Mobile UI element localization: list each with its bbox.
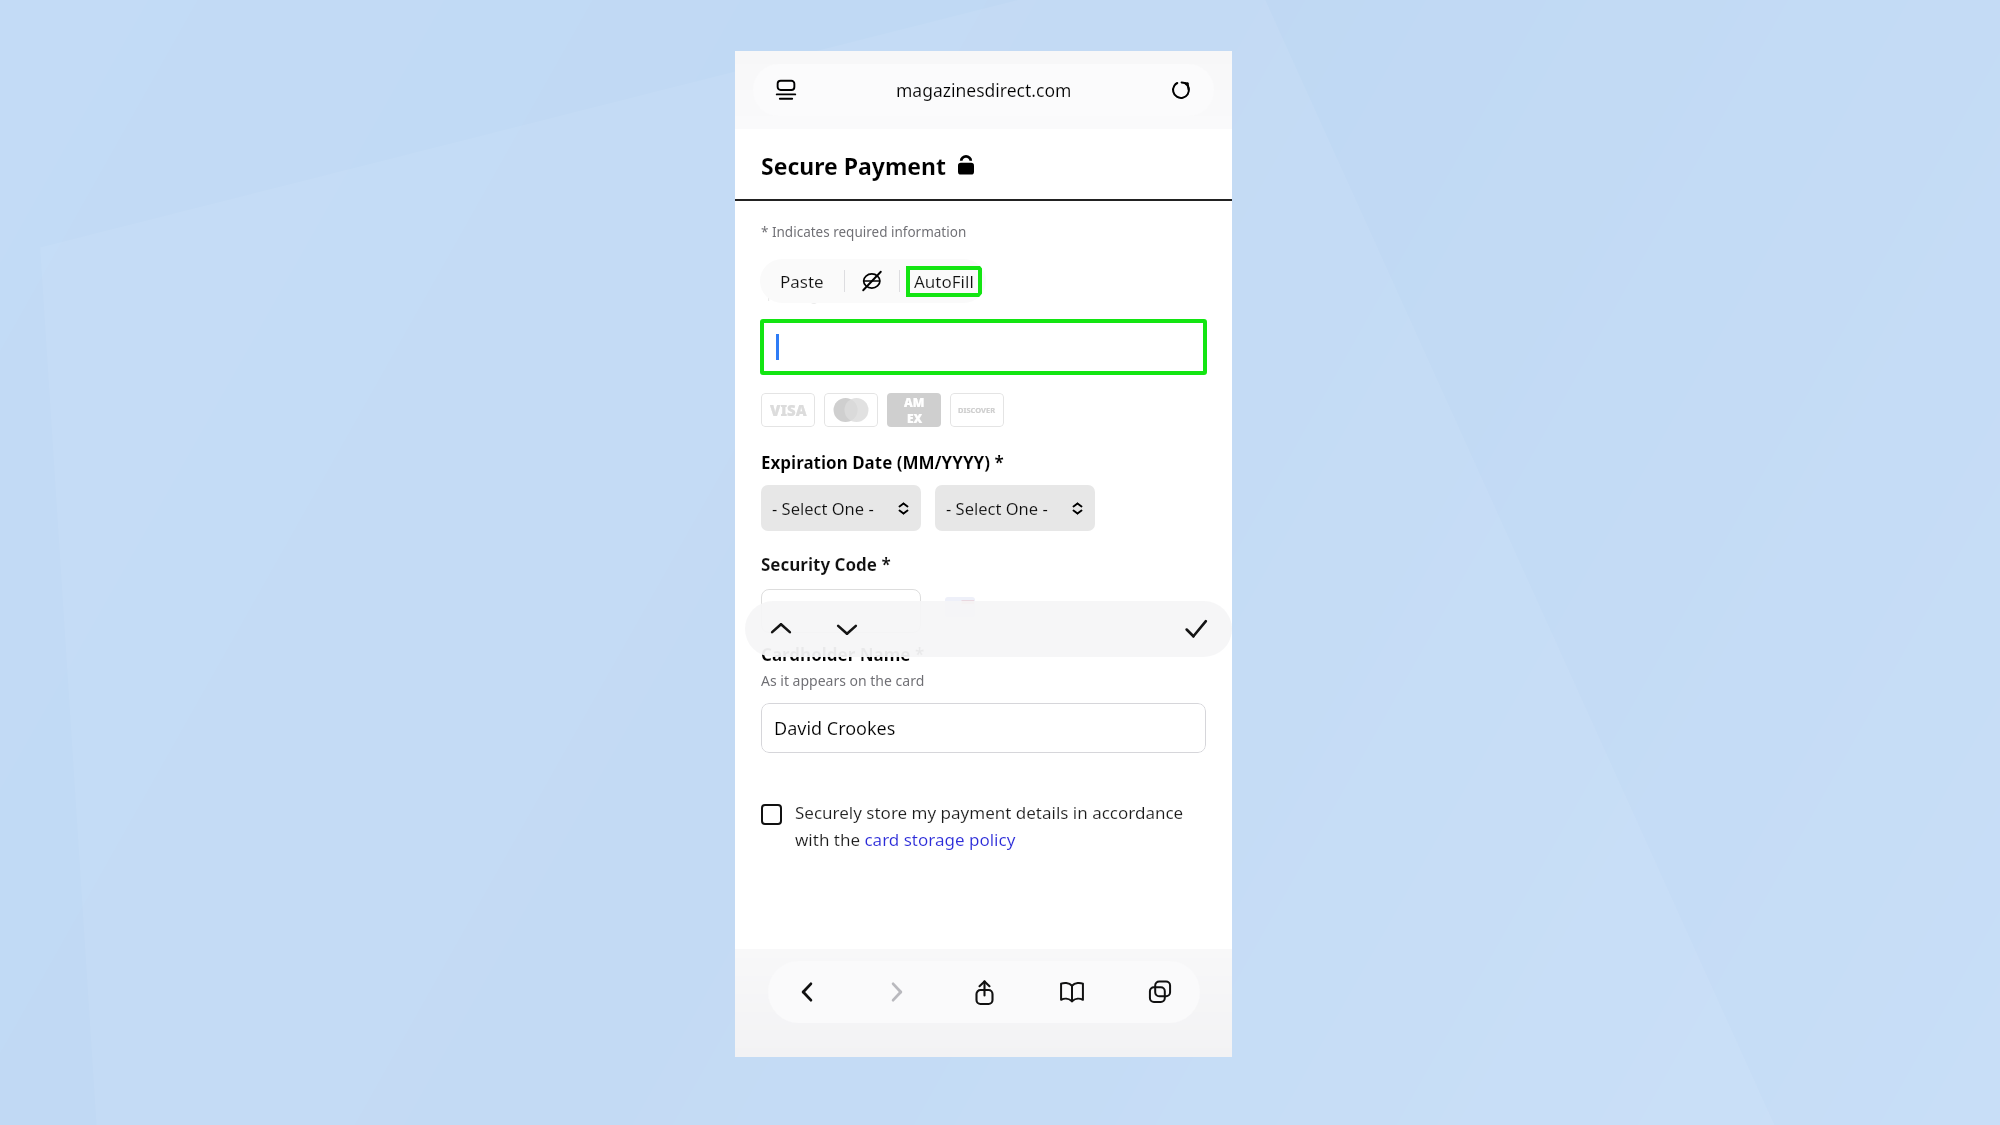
button[interactable]: Paste: [760, 259, 844, 303]
staticText: - Select One -: [772, 497, 874, 519]
button[interactable]: Reload: [1164, 73, 1198, 107]
button[interactable]: Back: [782, 966, 834, 1018]
button[interactable]: - Select One -: [761, 485, 921, 531]
staticText: Expiration Date (MM/YYYY) *: [761, 451, 1004, 474]
staticText: Paste: [780, 270, 824, 293]
button[interactable]: Done: [1174, 607, 1218, 651]
staticText: The long number on the card: [765, 287, 944, 305]
button[interactable]: Tabs: [1134, 966, 1186, 1018]
button[interactable]: AutoFill: [906, 259, 982, 303]
button[interactable]: David Crookes: [761, 703, 1206, 753]
staticText: EX: [907, 410, 923, 426]
staticText: Card Number *: [765, 261, 885, 283]
staticText: As it appears on the card: [761, 671, 925, 690]
staticText: David Crookes: [774, 716, 896, 741]
button[interactable]: Previous field: [759, 607, 803, 651]
button[interactable]: Forward: [870, 966, 922, 1018]
button[interactable]: [764, 323, 1203, 371]
staticText: DISCOVER: [958, 405, 996, 415]
staticText: AutoFill: [914, 270, 974, 293]
button[interactable]: - Select One -: [935, 485, 1095, 531]
button[interactable]: Next field: [825, 607, 869, 651]
staticText: Cardholder Name *: [761, 643, 925, 666]
staticText: Secure Payment: [761, 150, 947, 181]
button[interactable]: Share: [958, 966, 1010, 1018]
button[interactable]: Securely store my payment details: [761, 804, 782, 825]
staticText: * Indicates required information: [761, 223, 967, 241]
staticText: Securely store my payment details in acc…: [795, 801, 1212, 851]
staticText: VISA: [770, 400, 807, 420]
staticText: magazinesdirect.com: [896, 78, 1072, 102]
button[interactable]: Bookmarks: [1046, 966, 1098, 1018]
button[interactable]: Page settings: [769, 73, 803, 107]
button[interactable]: Scan card: [861, 259, 883, 303]
staticText: - Select One -: [946, 497, 1048, 519]
button[interactable]: Page settings: [753, 64, 1214, 116]
staticText: AM: [904, 394, 925, 410]
staticText: Security Code *: [761, 553, 891, 576]
